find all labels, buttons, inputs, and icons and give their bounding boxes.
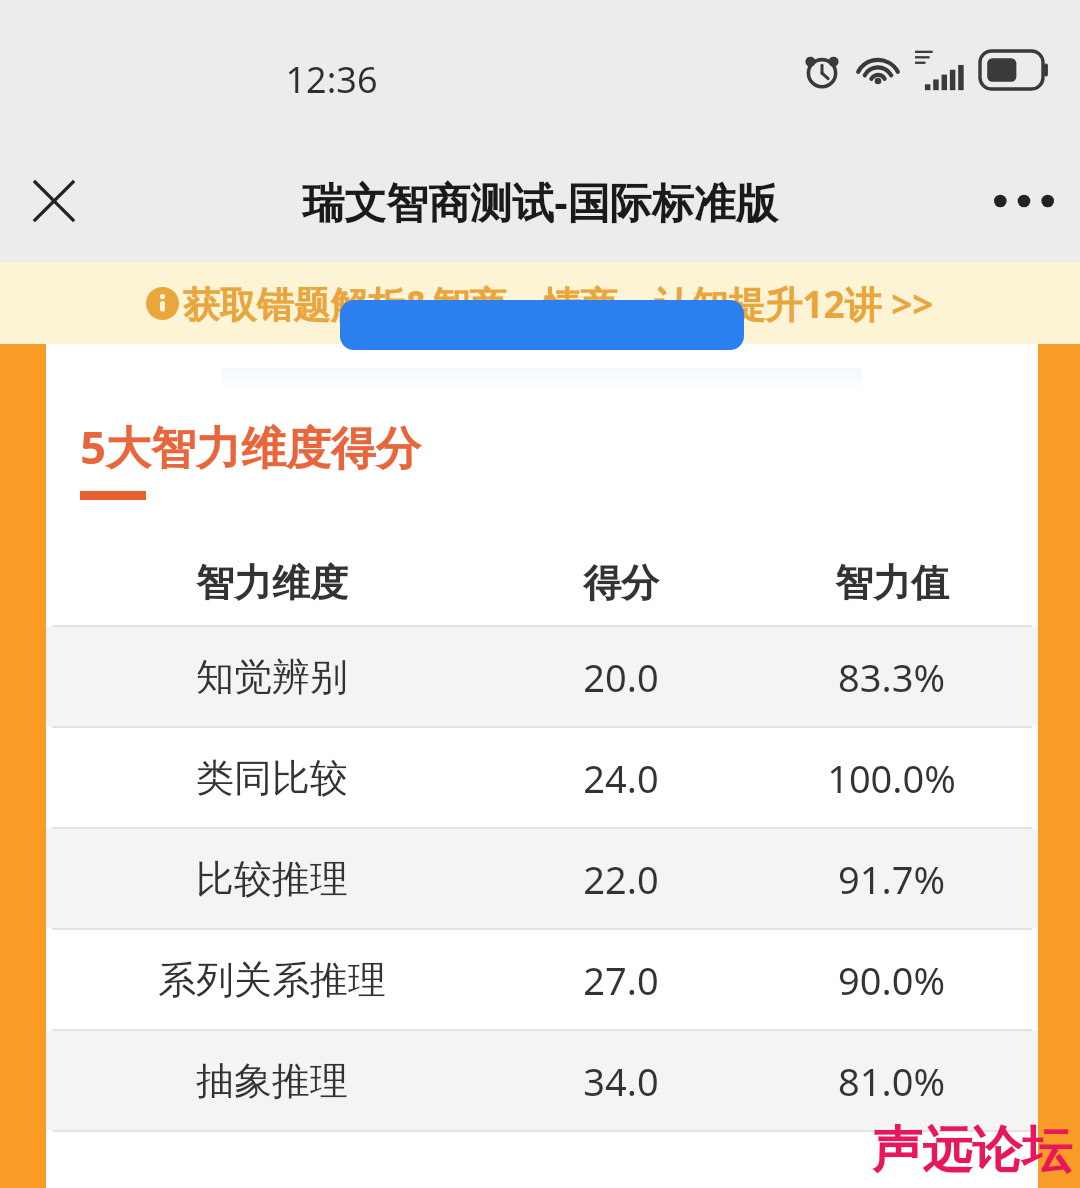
staticText: 系列关系推理 <box>158 956 386 1004</box>
button[interactable]: Close <box>18 165 90 237</box>
button[interactable]: 系列关系推理 <box>46 930 1038 1029</box>
staticText: 90.0% <box>838 954 945 1006</box>
staticText: 27.0 <box>583 954 659 1006</box>
staticText: 22.0 <box>583 853 659 905</box>
staticText: 91.7% <box>838 853 945 905</box>
staticText: 知觉辨别 <box>196 653 348 701</box>
staticText: 81.0% <box>838 1055 945 1107</box>
staticText: 100.0% <box>827 752 956 804</box>
staticText: 抽象推理 <box>196 1057 348 1105</box>
staticText: 智力值 <box>835 559 949 607</box>
button[interactable]: 类同比较 <box>46 728 1038 827</box>
staticText: 83.3% <box>838 651 945 703</box>
staticText: 声远论坛 <box>872 1119 1072 1182</box>
staticText: 智力维度 <box>196 559 348 607</box>
staticText: 比较推理 <box>196 855 348 903</box>
staticText: 20.0 <box>583 651 659 703</box>
button[interactable] <box>340 300 744 350</box>
button[interactable]: 智力维度 <box>46 540 1038 625</box>
button[interactable]: 知觉辨别 <box>46 627 1038 726</box>
staticText: 瑞文智商测试-国际标准版 <box>302 173 778 230</box>
staticText: 34.0 <box>583 1055 659 1107</box>
button[interactable]: 比较推理 <box>46 829 1038 928</box>
staticText: 获取错题解析&智商、情商、认知提升12讲 >> <box>182 278 934 329</box>
button[interactable]: 获取错题解析&智商、情商、认知提升12讲 >> <box>0 262 1080 344</box>
staticText: 12:36 <box>285 55 378 104</box>
staticText: 得分 <box>583 559 659 607</box>
staticText: 类同比较 <box>196 754 348 802</box>
button[interactable]: 抽象推理 <box>46 1031 1038 1130</box>
staticText: 24.0 <box>583 752 659 804</box>
button[interactable]: More options <box>986 163 1062 239</box>
staticText: 5大智力维度得分 <box>80 416 421 477</box>
